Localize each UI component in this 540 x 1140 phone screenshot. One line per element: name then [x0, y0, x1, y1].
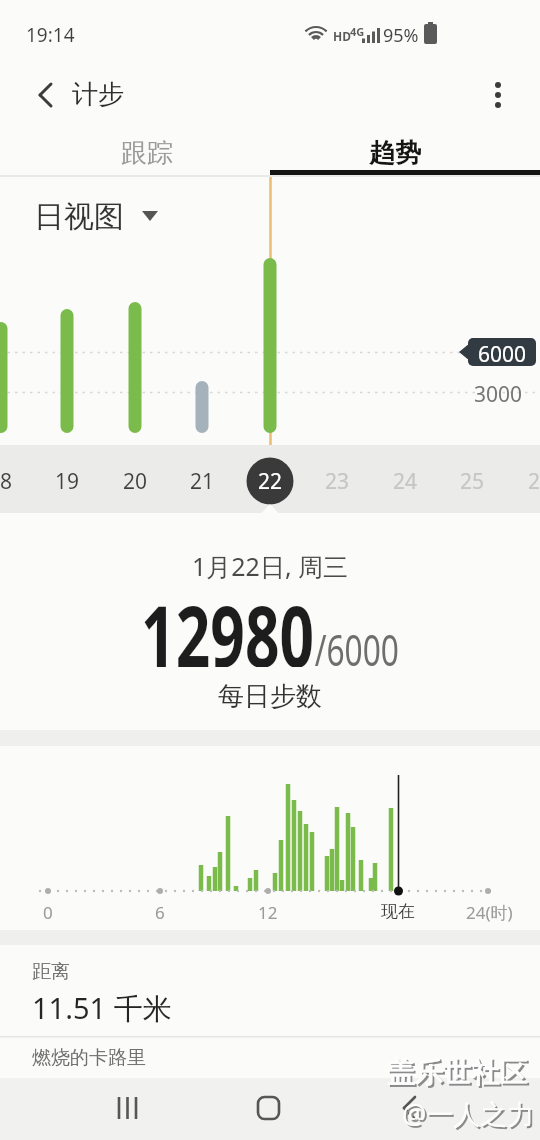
button[interactable] [0, 447, 24, 511]
button[interactable] [112, 447, 158, 511]
staticText: 20 [123, 467, 148, 496]
staticText: 23 [325, 467, 350, 496]
staticText: 4G [350, 24, 365, 39]
button[interactable]: 跟踪 [12, 131, 282, 175]
staticText: 95% [383, 23, 419, 48]
staticText: 24 [393, 467, 418, 496]
staticText: 26 [528, 467, 540, 496]
staticText: HD [333, 28, 351, 44]
staticText: 25 [460, 467, 485, 496]
staticText: 跟踪 [121, 137, 173, 170]
staticText: 距离 [32, 960, 70, 984]
staticText: 盖乐世社区 [389, 1057, 529, 1092]
button[interactable] [478, 75, 518, 115]
staticText: 1月22日, 周三 [192, 549, 349, 583]
button[interactable] [225, 1080, 315, 1138]
button[interactable] [0, 1043, 540, 1078]
staticText: 18 [0, 467, 13, 496]
staticText: @一人之力 [402, 1095, 535, 1132]
staticText: 19:14 [26, 22, 75, 48]
staticText: 12 [258, 901, 278, 924]
staticText: 0 [43, 901, 53, 924]
staticText: 24(时) [466, 901, 513, 924]
staticText: 现在 [381, 901, 415, 922]
staticText: 6 [155, 901, 165, 924]
staticText: 19 [55, 467, 80, 496]
button[interactable]: 趋势 [260, 131, 530, 175]
button[interactable] [380, 447, 426, 511]
button[interactable] [45, 447, 91, 511]
button[interactable] [90, 1080, 180, 1138]
staticText: /6000 [315, 619, 400, 679]
staticText: 6000 [478, 340, 527, 369]
button[interactable] [179, 447, 225, 511]
staticText: 盖乐世社区 [387, 1055, 527, 1090]
button[interactable] [30, 196, 160, 234]
staticText: 22 [258, 467, 283, 496]
button[interactable] [360, 1080, 450, 1138]
button[interactable] [26, 75, 66, 115]
staticText: 11.51 千米 [32, 988, 172, 1028]
staticText: 日视图 [34, 198, 124, 236]
staticText: 12980 [141, 577, 315, 667]
button[interactable] [313, 447, 359, 511]
staticText: @一人之力 [404, 1097, 537, 1134]
button[interactable] [447, 447, 493, 511]
button[interactable] [0, 950, 540, 1040]
button[interactable] [246, 447, 292, 511]
staticText: 趋势 [369, 137, 421, 170]
staticText: 燃烧的卡路里 [32, 1046, 146, 1070]
staticText: 21 [190, 467, 215, 496]
staticText: 每日步数 [218, 680, 322, 713]
staticText: 计步 [72, 78, 124, 111]
staticText: 3000 [474, 380, 523, 409]
